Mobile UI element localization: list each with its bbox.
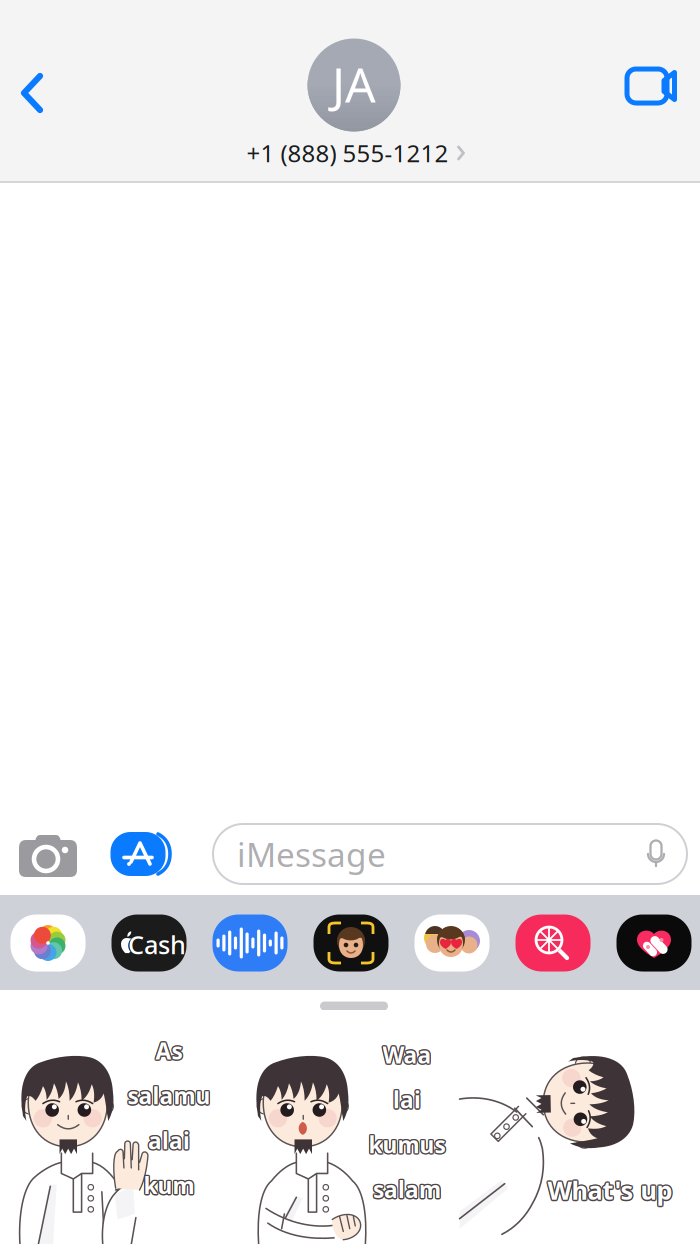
staticText: What's up <box>548 1172 673 1206</box>
button[interactable]: What's up sticker <box>466 1010 700 1244</box>
staticText: salam <box>372 1175 440 1206</box>
staticText: Waa <box>381 1040 430 1071</box>
staticText: Waa <box>384 1039 433 1070</box>
staticText: kumus <box>368 1130 445 1161</box>
staticText: As <box>154 1036 181 1067</box>
staticText: salamu <box>127 1081 210 1112</box>
staticText: lai <box>393 1084 421 1115</box>
staticText: salamu <box>129 1080 212 1111</box>
staticText: alai <box>148 1125 190 1156</box>
staticText: kumus <box>369 1130 446 1161</box>
staticText: salam <box>373 1173 441 1203</box>
staticText: alai <box>149 1125 191 1156</box>
staticText: salam <box>373 1174 441 1205</box>
button[interactable]: FaceTime <box>617 51 697 121</box>
staticText: lai <box>392 1083 420 1114</box>
staticText: lai <box>393 1085 421 1116</box>
staticText: As <box>154 1034 181 1065</box>
staticText: salam <box>374 1175 442 1206</box>
staticText: What's up <box>547 1171 672 1206</box>
staticText: kum <box>142 1171 193 1202</box>
staticText: As <box>156 1036 183 1067</box>
staticText: lai <box>393 1083 421 1114</box>
button[interactable]: Back <box>0 58 66 128</box>
staticText: salam <box>374 1173 442 1204</box>
staticText: alai <box>148 1126 190 1157</box>
button[interactable]: iMessage <box>213 824 687 884</box>
button[interactable]: Memoji <box>313 914 388 971</box>
staticText: Waa <box>382 1041 431 1071</box>
button[interactable]: +1 (888) 555-1212 <box>238 133 473 173</box>
button[interactable]: Audio Message <box>212 914 287 971</box>
button[interactable]: Photos <box>10 914 85 971</box>
staticText: As <box>154 1035 181 1066</box>
staticText: salam <box>372 1173 440 1204</box>
staticText: As <box>157 1035 184 1066</box>
staticText: kumus <box>370 1129 447 1160</box>
staticText: salamu <box>127 1079 210 1110</box>
staticText: alai <box>147 1126 189 1157</box>
staticText: salamu <box>126 1080 209 1111</box>
staticText: What's up <box>548 1174 673 1208</box>
button[interactable]: Apps <box>106 823 186 885</box>
staticText: kum <box>144 1169 195 1200</box>
button[interactable]: Images <box>515 914 590 971</box>
staticText: Waa <box>383 1040 432 1071</box>
staticText: What's up <box>549 1173 674 1207</box>
staticText: alai <box>149 1124 191 1155</box>
staticText: kum <box>142 1169 193 1200</box>
staticText: salam <box>374 1174 442 1205</box>
staticText: Waa <box>383 1038 432 1069</box>
staticText: kumus <box>368 1128 445 1159</box>
staticText: lai <box>392 1085 420 1116</box>
staticText: JA <box>332 52 376 116</box>
staticText: salamu <box>126 1081 209 1112</box>
staticText: iMessage <box>237 832 386 876</box>
staticText: alai <box>149 1126 191 1157</box>
button[interactable]: Apple Cash <box>111 914 186 971</box>
staticText: What's up <box>546 1174 671 1208</box>
staticText: alai <box>148 1124 190 1155</box>
staticText: kumus <box>367 1128 444 1159</box>
button[interactable]: Fitness <box>616 914 691 971</box>
staticText: alai <box>147 1124 189 1155</box>
staticText: kum <box>143 1170 194 1201</box>
staticText: kum <box>143 1169 194 1199</box>
staticText: As <box>155 1037 182 1067</box>
button[interactable]: Waalaikumussalam sticker <box>233 1010 466 1244</box>
staticText: salamu <box>128 1079 211 1110</box>
staticText: salam <box>372 1174 440 1205</box>
staticText: kumus <box>367 1129 444 1160</box>
staticText: salamu <box>127 1080 210 1111</box>
staticText: What's up <box>546 1173 671 1207</box>
staticText: salamu <box>126 1079 209 1110</box>
staticText: As <box>155 1035 182 1066</box>
staticText: lai <box>394 1085 422 1116</box>
staticText: As <box>155 1034 182 1065</box>
staticText: kum <box>142 1170 193 1201</box>
staticText: kum <box>145 1170 196 1201</box>
staticText: kumus <box>367 1130 444 1161</box>
staticText: Waa <box>381 1039 430 1070</box>
staticText: What's up <box>547 1173 672 1207</box>
staticText: salam <box>373 1175 441 1206</box>
staticText: +1 (888) 555-1212 <box>246 137 448 169</box>
button[interactable]: Camera <box>11 825 85 887</box>
staticText: lai <box>394 1083 422 1114</box>
staticText: lai <box>394 1084 422 1115</box>
staticText: salamu <box>128 1081 211 1112</box>
staticText: As <box>156 1034 183 1065</box>
staticText: kum <box>144 1171 195 1202</box>
staticText: alai <box>147 1125 189 1156</box>
staticText: kumus <box>369 1128 446 1159</box>
staticText: Waa <box>382 1038 431 1069</box>
staticText: Waa <box>382 1039 431 1070</box>
staticText: kum <box>143 1171 194 1202</box>
staticText: lai <box>392 1084 420 1115</box>
button[interactable]: Memoji Stickers <box>414 914 489 971</box>
staticText: What's up <box>546 1172 671 1206</box>
button[interactable]: Assalamu alaikum sticker <box>0 1010 233 1244</box>
staticText: What's up <box>547 1174 672 1208</box>
staticText: kumus <box>368 1129 445 1160</box>
staticText: Waa <box>381 1038 430 1069</box>
